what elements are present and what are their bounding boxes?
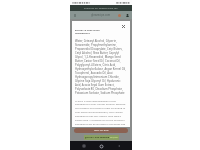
button[interactable]: Recents	[80, 142, 88, 150]
button[interactable]: Menu	[72, 12, 78, 18]
button[interactable]: Home	[97, 142, 105, 150]
staticText: SHIPPING ON ORDERS OVER $50	[84, 7, 118, 10]
staticText: ADD TO BAG	[94, 129, 109, 132]
staticText: *This is a close approximation of the in…	[75, 99, 127, 127]
button[interactable]: Back	[115, 142, 123, 150]
staticText: glowrecipe.com	[91, 13, 111, 17]
button[interactable]: $20 off + free shipping	[84, 135, 119, 140]
staticText: $20 off + free shipping	[85, 136, 110, 139]
staticText: BARLEY & SAGE MASK	[75, 29, 100, 32]
staticText: INGREDIENTS:	[75, 32, 91, 35]
button[interactable]: Account	[125, 13, 130, 18]
button[interactable]: ADD TO BAG	[74, 128, 128, 133]
staticText: Water, Cetearyl Alcohol, Glycerin, Stear…	[75, 39, 127, 95]
staticText: on $50+	[110, 136, 119, 139]
button[interactable]: Close	[120, 23, 126, 29]
button[interactable]: SHIPPING ON ORDERS OVER $50	[70, 5, 132, 11]
button[interactable]: glowrecipe.com	[70, 11, 132, 19]
button[interactable]: Rewards	[117, 13, 122, 18]
